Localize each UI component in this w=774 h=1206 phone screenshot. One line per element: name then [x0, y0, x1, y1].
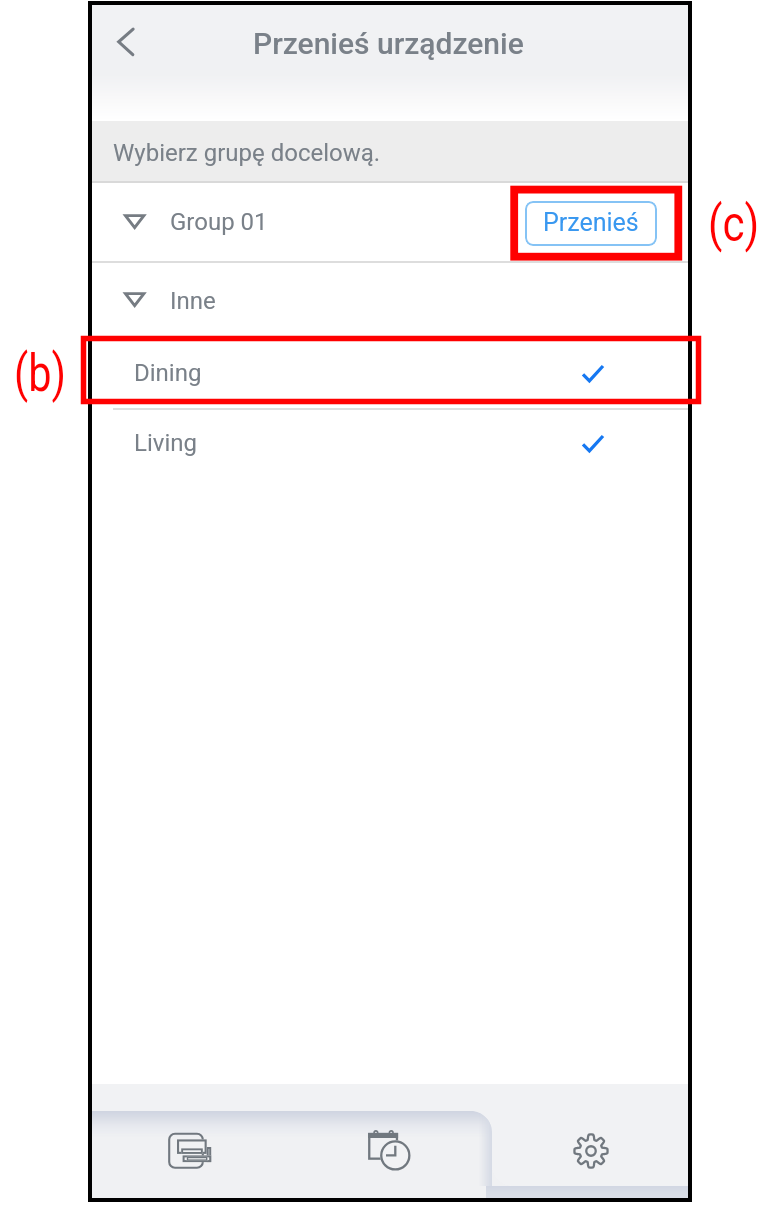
button[interactable]: Inne	[92, 263, 688, 338]
button[interactable]: Devices	[132, 1106, 332, 1198]
staticText: Inne	[170, 287, 216, 315]
button[interactable]: Przenieś	[525, 201, 657, 246]
button[interactable]: Dining	[92, 338, 688, 408]
button[interactable]: Settings	[492, 1106, 688, 1198]
staticText: Dining	[134, 359, 202, 387]
button[interactable]: Group 01	[170, 208, 268, 236]
staticText: (b)	[14, 344, 66, 405]
button[interactable]: Back	[98, 13, 154, 69]
staticText: Wybierz grupę docelową.	[113, 139, 381, 167]
button[interactable]: Living	[92, 408, 688, 478]
button[interactable]: Schedule	[332, 1106, 492, 1198]
staticText: Przenieś urządzenie	[253, 26, 524, 61]
staticText: Przenieś	[543, 208, 639, 237]
staticText: Living	[134, 429, 197, 457]
staticText: (c)	[708, 195, 760, 254]
